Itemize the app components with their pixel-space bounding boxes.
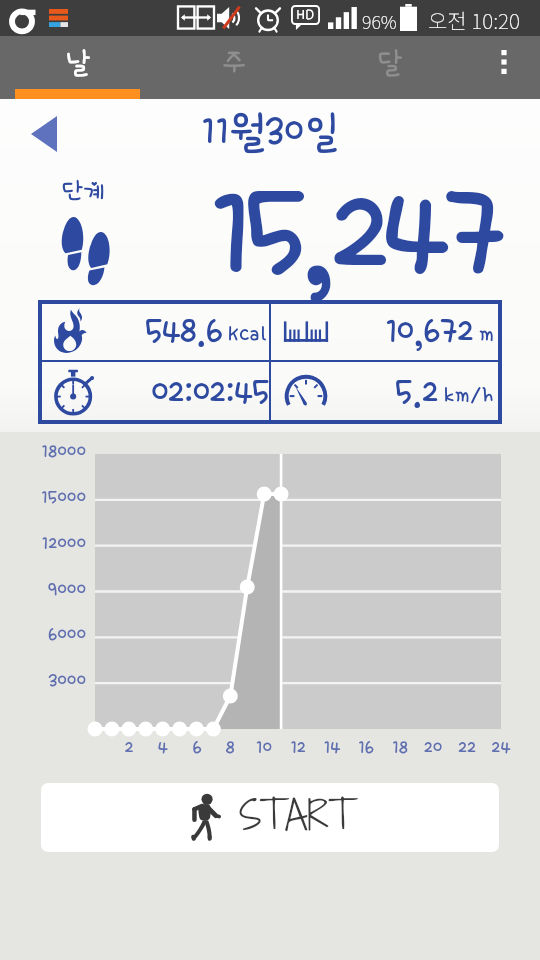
staticText: 15,247	[208, 165, 500, 306]
staticText: 16	[346, 737, 386, 758]
staticText: 24	[481, 737, 521, 758]
staticText: 12000	[0, 533, 86, 554]
button[interactable]: 달	[312, 36, 468, 88]
staticText: 10,672	[385, 312, 473, 351]
staticText: 14	[312, 737, 352, 758]
staticText: 9000	[0, 579, 86, 600]
staticText: 단계	[62, 178, 104, 204]
staticText: m	[479, 322, 494, 346]
staticText: 548.6	[145, 312, 222, 351]
staticText: 18000	[0, 441, 86, 462]
staticText: 4	[143, 737, 183, 758]
staticText: 날	[66, 47, 91, 77]
button[interactable]: More options	[468, 36, 540, 88]
staticText: 주	[222, 47, 247, 77]
button[interactable]: Previous day	[19, 109, 69, 159]
staticText: 12	[278, 737, 318, 758]
staticText: km/h	[444, 383, 494, 407]
staticText: 5.2	[395, 373, 438, 412]
staticText: 3000	[0, 670, 86, 691]
staticText: 20	[413, 737, 453, 758]
staticText: START	[239, 788, 354, 843]
staticText: 22	[447, 737, 487, 758]
staticText: 6000	[0, 624, 86, 645]
staticText: 18	[380, 737, 420, 758]
staticText: 96%	[362, 8, 397, 34]
staticText: 11월30일	[201, 110, 340, 154]
staticText: 오전 10:20	[428, 5, 520, 35]
staticText: 02:02:45	[151, 373, 269, 412]
staticText: 2	[109, 737, 149, 758]
staticText: 8	[210, 737, 250, 758]
button[interactable]: START	[41, 783, 499, 852]
staticText: 달	[378, 47, 403, 77]
staticText: 15000	[0, 487, 86, 508]
button[interactable]: 날	[0, 36, 156, 88]
button[interactable]: 주	[156, 36, 312, 88]
staticText: Kcal	[228, 322, 267, 346]
staticText: 6	[177, 737, 217, 758]
staticText: 10	[244, 737, 284, 758]
